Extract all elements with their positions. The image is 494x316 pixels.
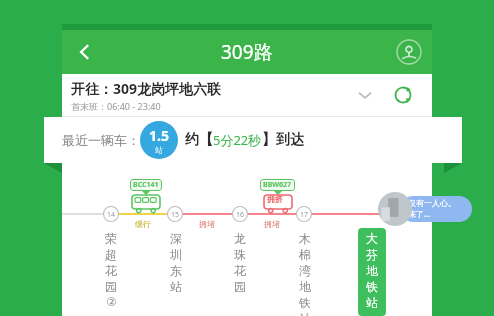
button[interactable]: Bus BCC141 <box>130 179 162 213</box>
staticText: ② <box>106 295 117 309</box>
staticText: 来了… <box>408 208 431 219</box>
staticText: 开往：309龙岗坪地六联 <box>71 79 222 98</box>
staticText: 圳 <box>170 247 182 262</box>
staticText: 地 <box>299 279 311 294</box>
staticText: 湾 <box>299 263 311 278</box>
staticText: 园 <box>105 279 117 294</box>
staticText: 首末班： <box>71 101 107 112</box>
staticText: 16 <box>236 210 245 220</box>
staticText: 站 <box>170 279 182 294</box>
staticText: 1.5 <box>149 126 169 145</box>
staticText: 309路 <box>221 39 273 65</box>
staticText: 站 <box>155 145 163 155</box>
staticText: 06:40 - 23:40 <box>107 100 161 112</box>
staticText: 仅有一人心。 <box>408 198 456 208</box>
staticText: 珠 <box>234 247 246 262</box>
staticText: 站 <box>366 295 378 310</box>
button[interactable]: 仅有一人心。 <box>400 196 472 222</box>
button[interactable]: Map <box>392 35 426 69</box>
staticText: 铁 <box>366 279 378 294</box>
button[interactable]: 龙 <box>232 231 248 295</box>
staticText: 拥挤 <box>267 194 283 204</box>
staticText: 芬 <box>366 247 378 262</box>
button[interactable]: Expand <box>350 80 380 110</box>
staticText: 拥堵 <box>199 219 215 229</box>
staticText: 超 <box>105 247 117 262</box>
staticText: BCC141 <box>133 180 159 190</box>
button[interactable]: 荣 <box>103 231 119 310</box>
staticText: 约【 <box>185 131 213 149</box>
staticText: 缓行 <box>135 219 151 229</box>
button[interactable]: Bus BBW627 <box>260 179 295 213</box>
staticText: 】到达 <box>262 131 304 149</box>
staticText: 深 <box>170 231 182 246</box>
staticText: 14 <box>107 210 116 220</box>
button[interactable]: 木 <box>297 231 313 316</box>
button[interactable]: User avatar <box>378 192 412 226</box>
button[interactable]: Back <box>68 35 102 69</box>
staticText: 拥堵 <box>264 219 280 229</box>
staticText: 花 <box>105 263 117 278</box>
staticText: 荣 <box>105 231 117 246</box>
staticText: 17 <box>300 210 309 220</box>
button[interactable]: 开往：309龙岗坪地六联 <box>62 74 432 116</box>
staticText: 花 <box>234 263 246 278</box>
button[interactable]: 深 <box>168 231 184 295</box>
staticText: 大 <box>366 231 378 246</box>
staticText: 龙 <box>234 231 246 246</box>
staticText: 园 <box>234 279 246 294</box>
staticText: 地 <box>366 263 378 278</box>
button[interactable]: Refresh <box>388 80 418 110</box>
staticText: 东 <box>170 263 182 278</box>
staticText: 木 <box>299 231 311 246</box>
staticText: 棉 <box>299 247 311 262</box>
staticText: 15 <box>171 210 180 220</box>
staticText: 最近一辆车： <box>62 132 140 148</box>
button[interactable]: 大 <box>358 228 386 316</box>
staticText: 站 <box>299 311 311 316</box>
button[interactable]: 最近一辆车： <box>44 117 462 163</box>
staticText: 5分22秒 <box>213 131 262 149</box>
staticText: BBW627 <box>263 180 292 190</box>
staticText: 铁 <box>299 295 311 310</box>
